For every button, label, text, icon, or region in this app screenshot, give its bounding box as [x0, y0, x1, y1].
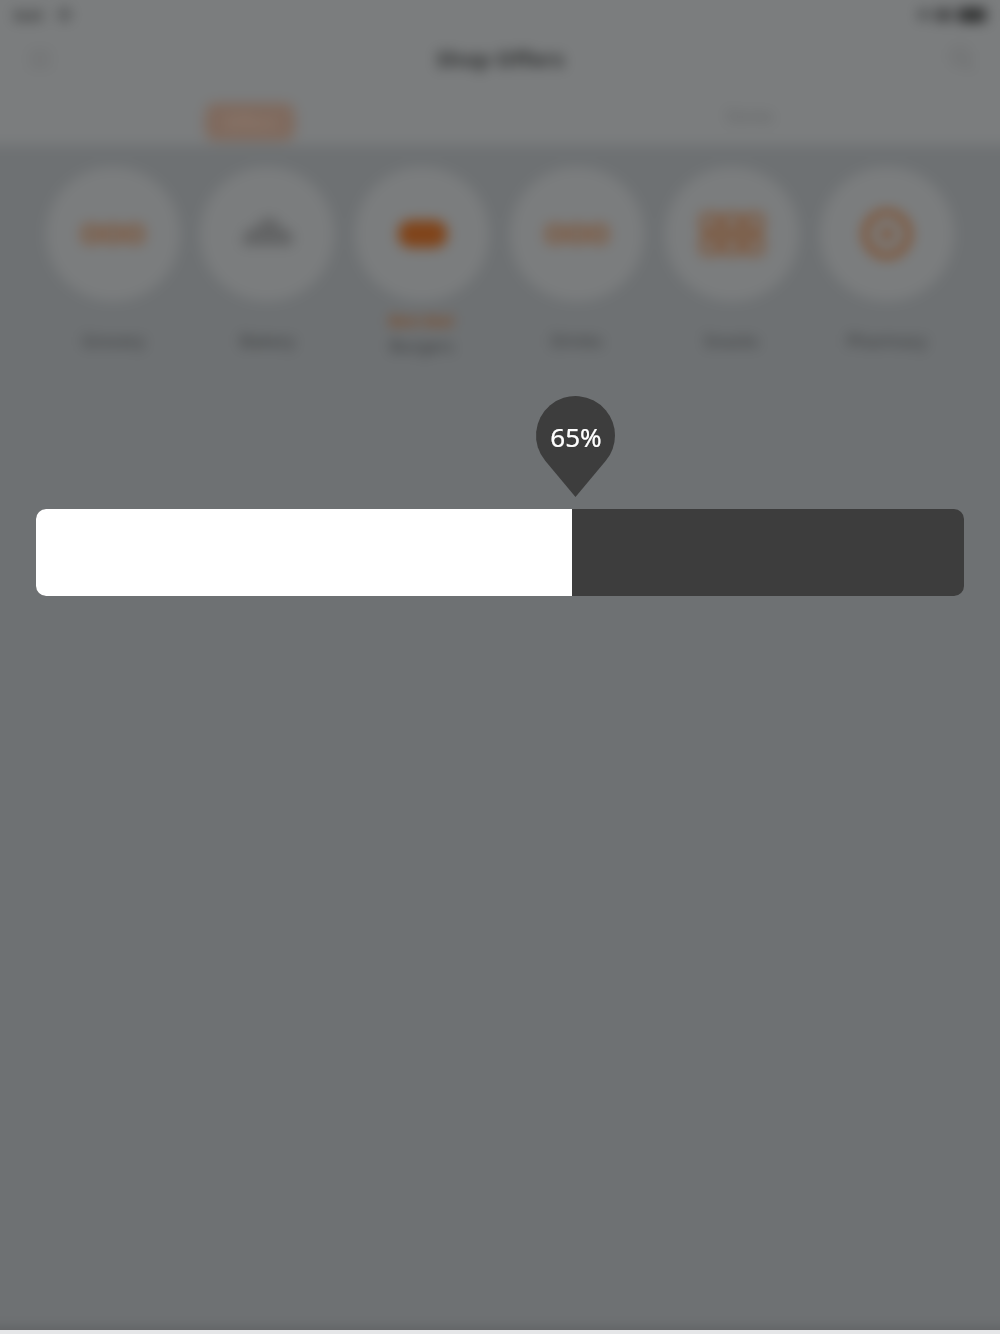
button[interactable]: Offers	[0, 87, 500, 145]
button[interactable]: Pharmacy	[809, 167, 964, 352]
button[interactable]: Bakery	[190, 167, 344, 352]
button[interactable]: Best deal	[344, 167, 499, 357]
staticText: 9:41	[14, 5, 44, 25]
staticText: Burgers	[390, 334, 454, 357]
button[interactable]: Grocery	[36, 167, 190, 352]
button[interactable]: Snacks	[654, 167, 809, 352]
staticText: Best deal	[389, 311, 454, 330]
staticText: Shop Offers	[436, 43, 565, 73]
staticText: Bakery	[240, 329, 295, 352]
staticText: 65%	[550, 419, 602, 454]
button[interactable]: Drinks	[499, 167, 654, 352]
button[interactable]	[36, 509, 964, 596]
